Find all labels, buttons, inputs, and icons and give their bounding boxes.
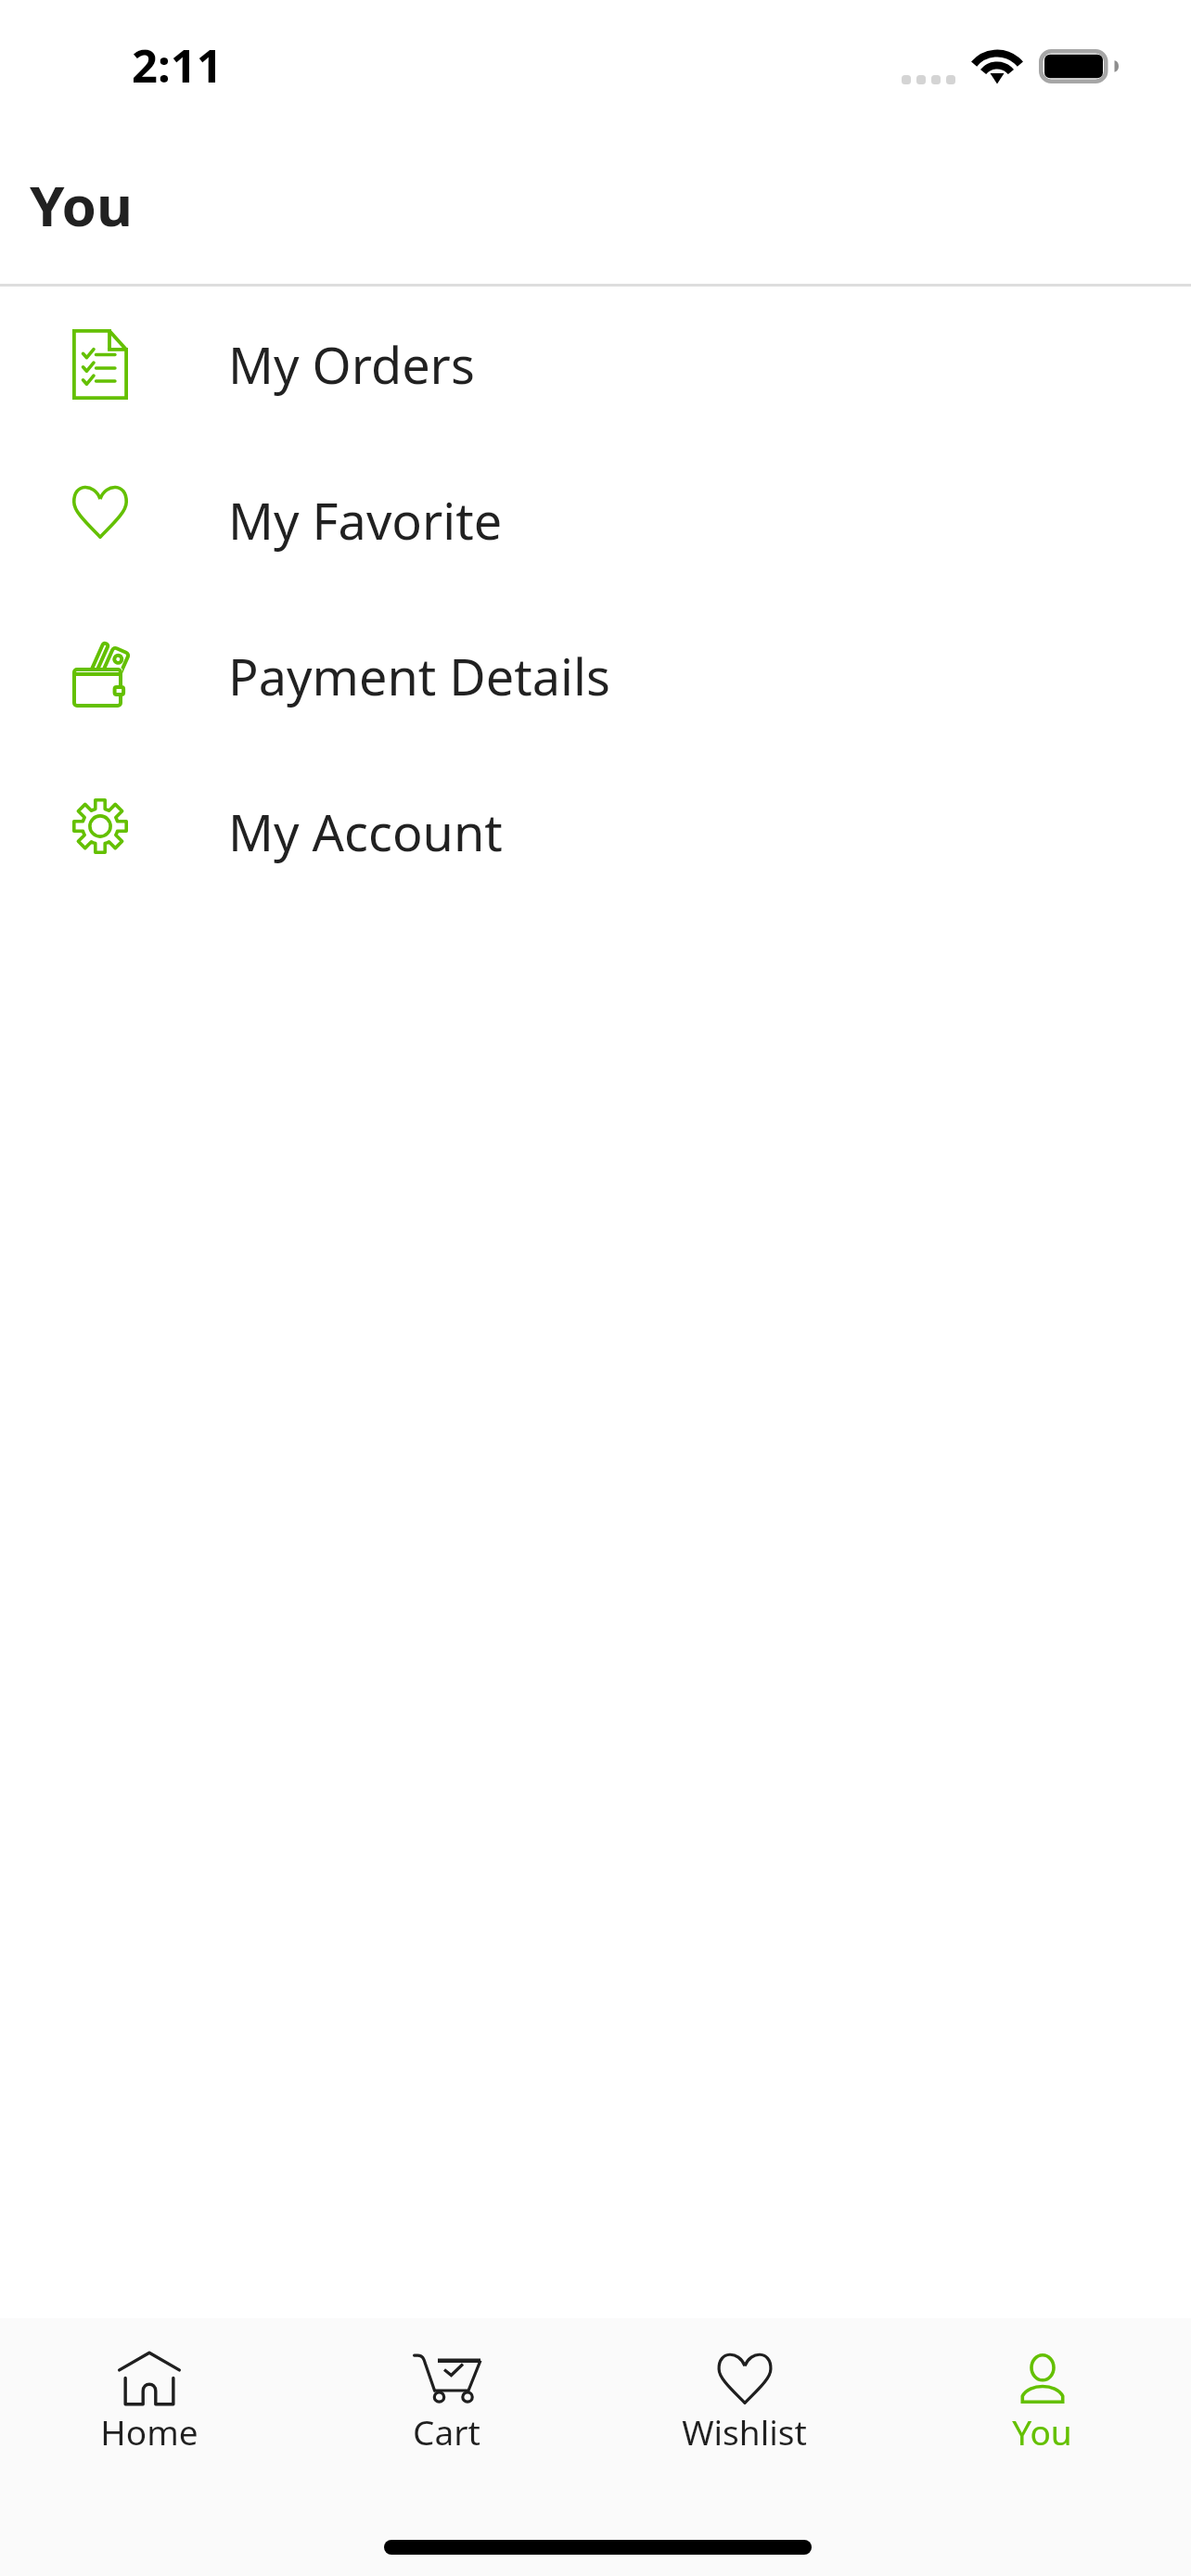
staticText: Wishlist [682, 2408, 807, 2455]
other: Home [112, 2350, 186, 2407]
other: You [1005, 2350, 1080, 2407]
staticText: My Account [228, 797, 503, 866]
button[interactable]: Payment Details [0, 598, 1191, 754]
button[interactable]: Home [0, 2318, 298, 2471]
button[interactable]: My Favorite [0, 442, 1191, 598]
staticText: My Orders [228, 330, 475, 399]
staticText: My Favorite [228, 486, 503, 555]
button[interactable]: Cart [298, 2318, 595, 2471]
button[interactable]: Wishlist [595, 2318, 893, 2471]
button[interactable]: You [893, 2318, 1191, 2471]
staticText: You [1012, 2408, 1072, 2455]
other: Wishlist [708, 2350, 782, 2407]
button[interactable]: My Orders [0, 287, 1191, 442]
staticText: Cart [413, 2408, 480, 2455]
staticText: Payment Details [228, 642, 610, 710]
staticText: 2:11 [132, 34, 223, 96]
other: Cart [410, 2350, 484, 2407]
staticText: You [30, 167, 134, 243]
button[interactable]: My Account [0, 754, 1191, 910]
staticText: Home [100, 2408, 198, 2455]
